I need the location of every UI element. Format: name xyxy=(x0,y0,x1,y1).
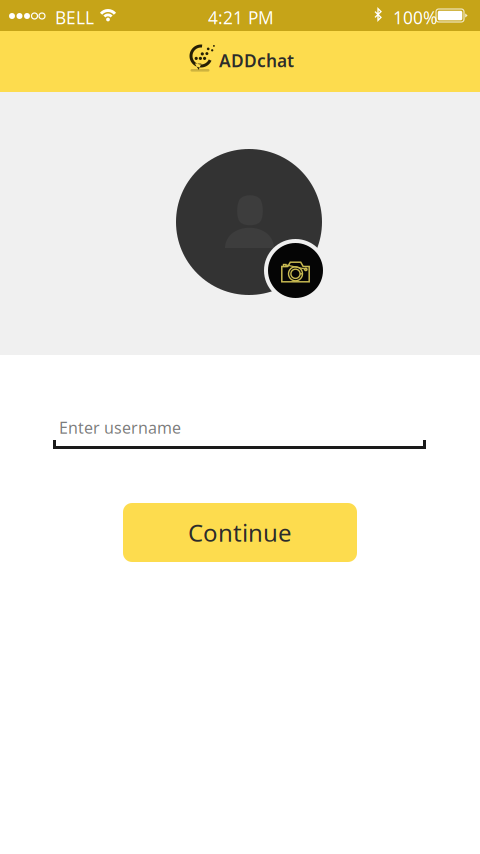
staticText: Enter username xyxy=(59,417,181,438)
staticText: ADDchat xyxy=(219,49,294,72)
staticText: 4:21 PM xyxy=(208,6,274,29)
staticText: 100% xyxy=(393,6,437,29)
button[interactable]: Change photo xyxy=(264,239,327,302)
staticText: Continue xyxy=(188,517,292,548)
button[interactable]: Enter username xyxy=(0,355,480,449)
button[interactable]: Continue xyxy=(123,503,357,562)
button[interactable]: Profile photo xyxy=(176,149,322,295)
staticText: BELL xyxy=(55,6,94,29)
